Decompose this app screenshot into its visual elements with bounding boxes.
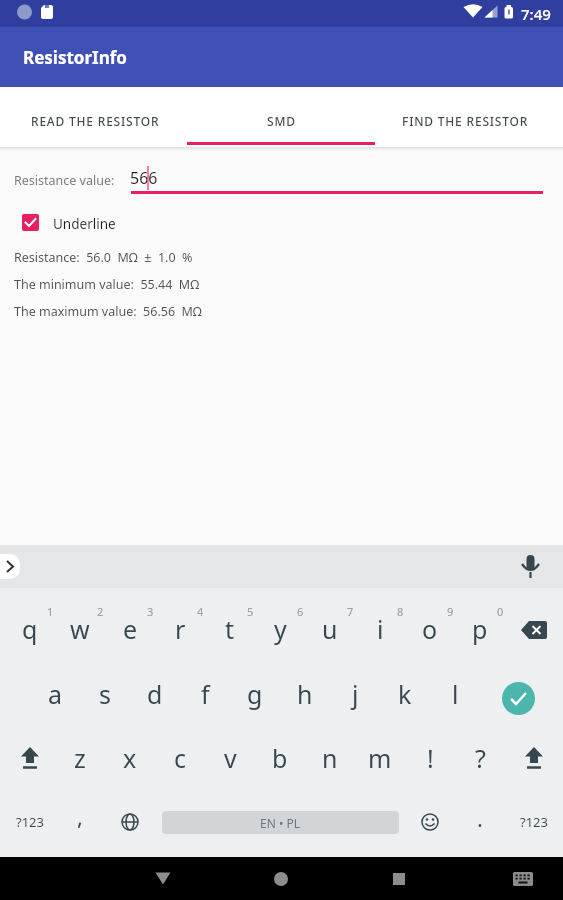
staticText: The maximum value: 56.56 MΩ: [14, 303, 202, 320]
staticText: h: [297, 677, 313, 711]
staticText: q: [22, 612, 38, 646]
button[interactable]: [405, 790, 455, 854]
staticText: j: [352, 677, 359, 711]
staticText: Resistance value:: [14, 172, 115, 189]
button[interactable]: [257, 857, 305, 900]
button[interactable]: x: [105, 726, 155, 790]
button[interactable]: t: [205, 598, 255, 662]
button[interactable]: n: [305, 726, 355, 790]
staticText: The minimum value: 55.44 MΩ: [14, 276, 200, 293]
button[interactable]: ?: [455, 726, 505, 790]
staticText: c: [174, 741, 187, 775]
staticText: 7: [347, 604, 354, 619]
staticText: n: [322, 741, 338, 775]
button[interactable]: m: [355, 726, 405, 790]
button[interactable]: [22, 214, 39, 231]
button[interactable]: c: [155, 726, 205, 790]
button[interactable]: l: [430, 662, 480, 726]
staticText: m: [368, 741, 392, 775]
staticText: s: [99, 677, 111, 711]
staticText: 8: [397, 604, 404, 619]
button[interactable]: f: [180, 662, 230, 726]
button[interactable]: q: [5, 598, 55, 662]
staticText: i: [377, 612, 384, 646]
staticText: 7:49: [521, 4, 551, 24]
button[interactable]: o: [405, 598, 455, 662]
button[interactable]: [505, 726, 563, 790]
staticText: v: [224, 741, 237, 775]
staticText: a: [48, 677, 63, 711]
button[interactable]: u: [305, 598, 355, 662]
button[interactable]: [5, 726, 55, 790]
button[interactable]: h: [280, 662, 330, 726]
staticText: y: [274, 612, 287, 646]
staticText: 3: [147, 604, 154, 619]
staticText: 6: [297, 604, 304, 619]
staticText: EN • PL: [260, 815, 301, 831]
button[interactable]: r: [155, 598, 205, 662]
button[interactable]: a: [30, 662, 80, 726]
staticText: 566: [130, 167, 158, 189]
button[interactable]: [375, 857, 423, 900]
button[interactable]: [505, 598, 563, 662]
staticText: d: [147, 677, 163, 711]
button[interactable]: [499, 857, 547, 900]
button[interactable]: ?123: [505, 790, 563, 854]
button[interactable]: g: [230, 662, 280, 726]
staticText: b: [272, 741, 288, 775]
button[interactable]: i: [355, 598, 405, 662]
staticText: k: [398, 677, 412, 711]
button[interactable]: d: [130, 662, 180, 726]
button[interactable]: [519, 548, 542, 586]
button[interactable]: y: [255, 598, 305, 662]
staticText: t: [225, 612, 235, 646]
button[interactable]: z: [55, 726, 105, 790]
staticText: l: [452, 677, 459, 711]
button[interactable]: e: [105, 598, 155, 662]
staticText: ResistorInfo: [23, 46, 127, 69]
staticText: 9: [447, 604, 454, 619]
staticText: e: [123, 612, 138, 646]
staticText: .: [477, 803, 483, 833]
staticText: Resistance: 56.0 MΩ ± 1.0 %: [14, 249, 193, 266]
button[interactable]: ?123: [5, 790, 55, 854]
staticText: u: [322, 612, 338, 646]
button[interactable]: EN • PL: [155, 790, 405, 854]
staticText: z: [74, 741, 86, 775]
button[interactable]: SMD: [187, 87, 375, 147]
button[interactable]: [139, 857, 187, 900]
button[interactable]: !: [405, 726, 455, 790]
button[interactable]: READ THE RESISTOR: [0, 87, 187, 147]
staticText: g: [247, 677, 263, 711]
button[interactable]: [105, 790, 155, 854]
button[interactable]: s: [80, 662, 130, 726]
button[interactable]: w: [55, 598, 105, 662]
staticText: ?123: [16, 813, 44, 831]
staticText: f: [201, 677, 210, 711]
staticText: SMD: [267, 113, 296, 129]
button[interactable]: ,: [55, 790, 105, 854]
button[interactable]: j: [330, 662, 380, 726]
button[interactable]: [0, 554, 20, 579]
button[interactable]: .: [455, 790, 505, 854]
button[interactable]: k: [380, 662, 430, 726]
staticText: FIND THE RESISTOR: [402, 113, 529, 129]
button[interactable]: FIND THE RESISTOR: [375, 87, 563, 147]
button[interactable]: p: [455, 598, 505, 662]
staticText: ?123: [520, 813, 548, 831]
staticText: o: [422, 612, 438, 646]
staticText: 1: [47, 604, 54, 619]
button[interactable]: [480, 662, 563, 726]
staticText: 2: [97, 604, 104, 619]
button[interactable]: b: [255, 726, 305, 790]
staticText: 4: [197, 604, 204, 619]
staticText: ,: [77, 801, 83, 831]
staticText: p: [472, 612, 488, 646]
button[interactable]: v: [205, 726, 255, 790]
staticText: x: [123, 741, 137, 775]
staticText: 5: [247, 604, 254, 619]
staticText: w: [70, 612, 90, 646]
staticText: !: [427, 741, 434, 775]
staticText: READ THE RESISTOR: [31, 113, 160, 129]
